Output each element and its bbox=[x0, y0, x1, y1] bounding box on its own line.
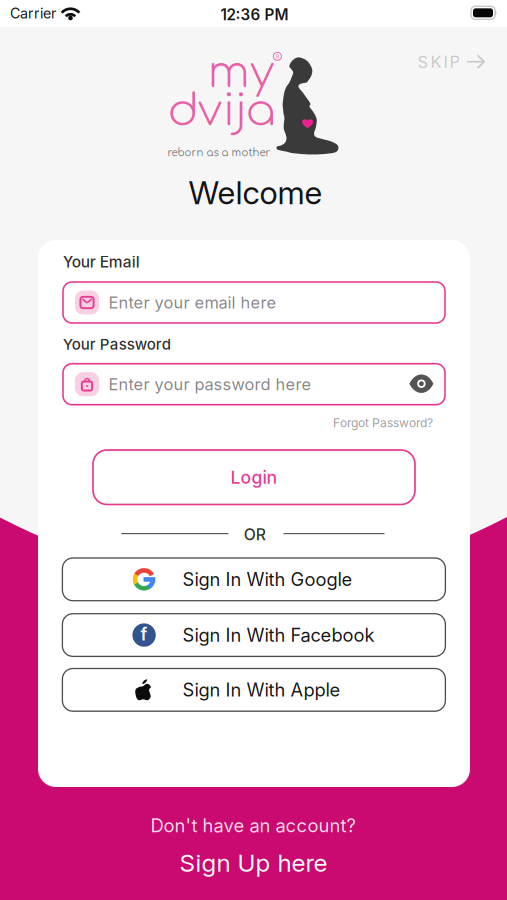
staticText: Sign In With Facebook bbox=[182, 624, 374, 646]
staticText: f bbox=[141, 624, 148, 645]
staticText: Enter your email here bbox=[108, 293, 276, 312]
staticText: S K I P bbox=[417, 52, 460, 72]
staticText: Your Password bbox=[63, 335, 171, 353]
staticText: Don't have an account? bbox=[150, 814, 355, 837]
button[interactable]: Enter your email here bbox=[63, 282, 445, 323]
staticText: my bbox=[208, 48, 274, 97]
button[interactable]: Sign In With Apple bbox=[62, 668, 445, 711]
staticText: dvija bbox=[168, 86, 276, 135]
staticText: Sign Up here bbox=[179, 848, 327, 878]
button[interactable]: Show password bbox=[409, 374, 434, 393]
button[interactable]: Sign Up here bbox=[179, 848, 327, 878]
staticText: OR bbox=[244, 525, 266, 544]
staticText: Enter your password here bbox=[108, 374, 311, 394]
button[interactable]: Enter your password here bbox=[63, 364, 445, 405]
button[interactable]: Skip bbox=[417, 53, 485, 71]
staticText: 12:36 PM bbox=[221, 5, 289, 24]
staticText: reborn as a mother bbox=[167, 147, 270, 159]
button[interactable]: Sign In With Google bbox=[62, 558, 445, 601]
staticText: Forgot Password? bbox=[333, 415, 433, 430]
staticText: Your Email bbox=[63, 253, 140, 271]
staticText: Login bbox=[230, 467, 277, 488]
button[interactable]: Login bbox=[93, 450, 415, 504]
staticText: Carrier bbox=[10, 5, 56, 22]
staticText: R bbox=[276, 53, 279, 59]
staticText: Sign In With Apple bbox=[182, 679, 340, 701]
staticText: Sign In With Google bbox=[182, 568, 352, 590]
button[interactable]: Forgot Password? bbox=[333, 415, 433, 430]
staticText: Welcome bbox=[188, 173, 322, 212]
button[interactable]: f bbox=[62, 614, 445, 656]
